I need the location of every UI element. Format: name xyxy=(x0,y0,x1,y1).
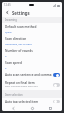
staticText: Number of rounds xyxy=(5,49,33,53)
button[interactable]: Auto tap selected item xyxy=(2,98,62,105)
button[interactable]: Scan speed xyxy=(2,59,62,71)
staticText: Auto scan sentence and comma xyxy=(5,73,52,77)
staticText: 12:45 xyxy=(4,3,11,7)
staticText: Item selection xyxy=(5,93,23,97)
staticText: Horizontal, left to right xyxy=(5,42,32,45)
staticText: Auto tap selected item xyxy=(5,100,39,103)
button[interactable]: On xyxy=(53,73,60,77)
staticText: Incoming xyxy=(5,18,17,22)
staticText: Scan direction xyxy=(5,37,27,41)
button[interactable]: Off xyxy=(53,100,60,103)
button[interactable]: Recents xyxy=(44,105,57,111)
button[interactable]: Home xyxy=(26,105,39,111)
button[interactable]: Number of rounds xyxy=(2,47,62,59)
staticText: 2 xyxy=(5,66,7,69)
staticText: Repeat on final item xyxy=(5,81,35,85)
staticText: Settings xyxy=(12,10,30,16)
staticText: 3 xyxy=(5,54,7,57)
button[interactable]: Back xyxy=(4,9,11,16)
staticText: Quick xyxy=(5,30,12,33)
button[interactable]: Scan direction xyxy=(2,35,62,47)
staticText: Default scan method xyxy=(5,25,37,29)
button[interactable]: Off xyxy=(53,83,60,87)
button[interactable]: Auto scan sentence and comma xyxy=(2,71,62,79)
staticText: Scan speed xyxy=(5,61,22,65)
button[interactable]: Repeat on final item xyxy=(2,79,62,90)
button[interactable]: Default scan method xyxy=(2,23,62,35)
staticText: Start scanning again after end xyxy=(5,85,38,88)
button[interactable]: Back xyxy=(7,105,20,111)
